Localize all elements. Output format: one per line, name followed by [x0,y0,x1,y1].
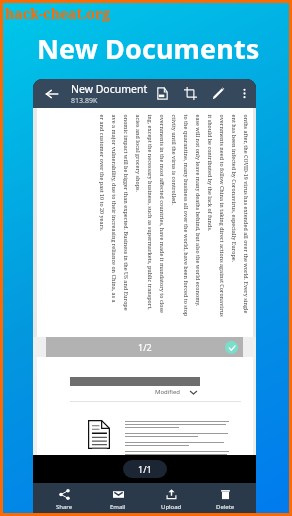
staticText: 1/1 [138,463,152,475]
staticText: to the quarantine, many business all ove… [182,114,189,316]
button[interactable] [37,420,253,455]
staticText: Modified [155,388,180,396]
button[interactable]: Share [41,483,87,516]
staticText: ing, except the necessary business, such… [146,114,153,310]
staticText: hack-cheat.org [5,4,111,23]
staticText: 813.89K [71,96,98,106]
staticText: onths after, the COVID-19 virus has exte… [242,114,249,313]
button[interactable]: Upload [148,483,194,516]
staticText: acies and local grocery shops. [134,114,141,192]
button[interactable]: 1/1 [123,460,167,478]
staticText: ctivity until the virus is controlled. [170,114,177,205]
staticText: ave a major vulnerability, due to their … [110,114,117,303]
button[interactable]: Crop [176,79,204,108]
staticText: Upload [161,503,182,511]
staticText: Email [110,503,126,511]
staticText: er and customer over the past 10 to 20 y… [98,114,105,231]
staticText: overnments need to follow China in takin… [218,114,225,317]
button[interactable]: Select page [225,341,238,354]
button[interactable]: Export as PDF [148,79,176,108]
button[interactable]: Delete [202,483,248,516]
staticText: overnments in the most affected countrie… [158,114,165,313]
button[interactable]: Email [95,483,141,516]
button[interactable]: More options [232,79,256,108]
button[interactable]: Back [33,79,71,108]
staticText: Delete [216,503,235,511]
staticText: Share [56,503,73,511]
staticText: ease will not only leave many deaths beh… [194,114,201,306]
staticText: ent has been infected by Coronavirus, es… [230,114,237,262]
staticText: it should be contributed by the lack of … [206,114,213,231]
staticText: 1/2 [138,341,152,353]
button[interactable]: Edit [204,79,232,108]
staticText: New Document [71,82,148,96]
staticText: New Documents [37,30,260,67]
staticText: onomic impact will be bigger than expect… [122,114,129,311]
